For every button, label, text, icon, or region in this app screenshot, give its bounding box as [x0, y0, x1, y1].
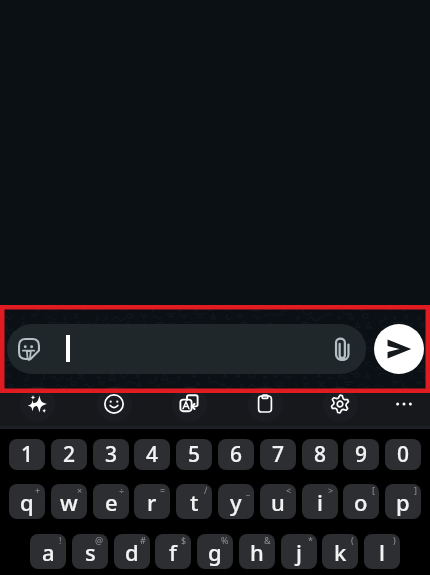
staticText: f [169, 537, 177, 567]
button[interactable]: 3 [93, 439, 129, 470]
button[interactable]: 7 [260, 439, 296, 470]
button[interactable]: 2 [51, 439, 87, 470]
staticText: @ [95, 534, 104, 546]
button[interactable]: 0 [385, 439, 421, 470]
staticText: 3 [105, 440, 118, 469]
staticText: / [204, 484, 208, 496]
staticText: j [296, 537, 302, 567]
staticText: & [264, 534, 271, 546]
staticText: i [317, 487, 323, 517]
button[interactable]: 9 [343, 439, 379, 470]
staticText: 7 [272, 440, 285, 469]
staticText: r [147, 487, 157, 517]
staticText: _ [246, 484, 250, 496]
button[interactable]: 4 [134, 439, 170, 470]
staticText: e [105, 487, 118, 517]
button[interactable]: g [197, 534, 233, 569]
button[interactable]: a [30, 534, 66, 569]
button[interactable]: q [9, 484, 45, 519]
button[interactable]: 1 [9, 439, 45, 470]
staticText: h [250, 537, 264, 567]
staticText: y [230, 487, 242, 517]
button[interactable]: w [51, 484, 87, 519]
staticText: * [308, 534, 313, 546]
button[interactable]: 5 [176, 439, 212, 470]
staticText: + [35, 484, 41, 496]
staticText: w [60, 487, 78, 517]
button[interactable]: j [281, 534, 317, 569]
staticText: > [328, 484, 334, 496]
staticText: ! [59, 534, 62, 546]
button[interactable]: d [114, 534, 150, 569]
button[interactable]: s [72, 534, 108, 569]
button[interactable]: Clipboard [243, 382, 287, 426]
staticText: ) [393, 534, 396, 546]
button[interactable]: t [176, 484, 212, 519]
button[interactable]: l [364, 534, 400, 569]
staticText: l [379, 537, 385, 567]
staticText: 6 [230, 440, 243, 469]
staticText: [ [372, 484, 375, 496]
button[interactable]: Send [374, 324, 424, 374]
staticText: % [221, 534, 229, 546]
button[interactable]: h [239, 534, 275, 569]
staticText: d [125, 537, 139, 567]
button[interactable]: Meta AI [15, 382, 59, 426]
button[interactable]: Settings [318, 382, 362, 426]
button[interactable]: Attach [333, 337, 351, 362]
button[interactable]: k [322, 534, 358, 569]
staticText: 5 [188, 440, 201, 469]
button[interactable]: Emoji [7, 324, 366, 374]
button[interactable]: p [385, 484, 421, 519]
staticText: 8 [314, 440, 327, 469]
staticText: 4 [146, 440, 159, 469]
staticText: $ [181, 534, 187, 546]
staticText: 1 [21, 440, 34, 469]
staticText: t [190, 487, 199, 517]
staticText: × [77, 484, 83, 496]
staticText: s [85, 537, 96, 567]
staticText: < [286, 484, 292, 496]
button[interactable]: More options [382, 382, 426, 426]
button[interactable]: 8 [302, 439, 338, 470]
button[interactable]: f [155, 534, 191, 569]
staticText: p [396, 487, 410, 517]
button[interactable]: Stickers [92, 382, 136, 426]
button[interactable]: Emoji [18, 338, 40, 360]
staticText: g [208, 537, 222, 567]
staticText: ] [414, 484, 417, 496]
staticText: # [140, 534, 146, 546]
staticText: 0 [397, 440, 410, 469]
staticText: ÷ [119, 484, 125, 496]
button[interactable]: r [134, 484, 170, 519]
button[interactable]: i [302, 484, 338, 519]
button[interactable]: 6 [218, 439, 254, 470]
button[interactable]: y [218, 484, 254, 519]
staticText: 2 [63, 440, 76, 469]
button[interactable]: Translate [167, 382, 211, 426]
staticText: = [160, 484, 166, 496]
staticText: 9 [355, 440, 368, 469]
staticText: ( [351, 534, 354, 546]
staticText: k [334, 537, 347, 567]
button[interactable]: e [93, 484, 129, 519]
button[interactable]: u [260, 484, 296, 519]
staticText: o [354, 487, 368, 517]
staticText: a [42, 537, 55, 567]
button[interactable]: o [343, 484, 379, 519]
staticText: u [271, 487, 285, 517]
staticText: q [20, 487, 34, 517]
